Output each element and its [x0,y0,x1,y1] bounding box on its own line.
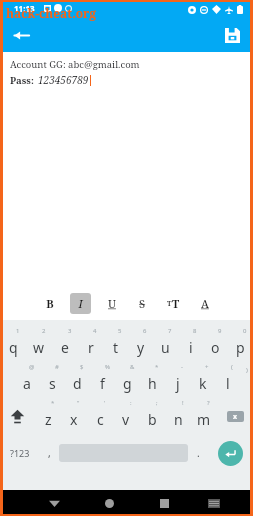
staticText: 123456789 [38,73,89,87]
button[interactable]: ' [87,398,113,434]
staticText: 1 [16,327,20,335]
button[interactable]: Switch keyboard [192,490,236,516]
button[interactable]: % [90,362,115,398]
staticText: 3 [68,327,72,335]
button[interactable]: + [190,362,215,398]
button[interactable]: Recent apps [137,490,192,516]
button[interactable]: , [39,434,59,472]
button[interactable]: ; [139,398,165,434]
button[interactable]: ( [215,362,240,398]
button[interactable]: Text size [163,293,184,314]
staticText: j [176,374,180,393]
staticText: ) [246,366,248,374]
staticText: U [108,296,116,311]
staticText: Account GG: abc@gmail.com [10,58,140,71]
button[interactable]: ?123 [0,434,39,472]
staticText: ' [104,399,106,407]
staticText: l [226,374,230,393]
staticText: - [181,363,183,371]
button[interactable]: 7 [153,326,178,362]
button[interactable]: ? [191,398,217,434]
staticText: q [9,338,18,357]
button[interactable]: Strikethrough [132,293,153,314]
staticText: , [48,446,51,460]
staticText: n [174,410,183,429]
staticText: e [61,338,69,357]
staticText: f [100,374,105,393]
staticText: @ [29,363,35,371]
button[interactable]: Back [6,20,36,50]
button[interactable]: Save [217,20,247,50]
staticText: w [33,338,45,357]
staticText: y [137,338,145,357]
button[interactable]: Home [82,490,137,516]
staticText: u [161,338,170,357]
staticText: " [77,399,80,407]
staticText: : [130,399,132,407]
button[interactable]: Back [27,490,82,516]
button[interactable]: 1 [0,326,26,362]
button[interactable]: 5 [103,326,128,362]
staticText: i [189,338,193,357]
staticText: * [155,363,159,371]
button[interactable]: 4 [78,326,103,362]
staticText: 6 [143,327,147,335]
staticText: 5 [118,327,122,335]
staticText: x [233,412,238,422]
button[interactable]: : [113,398,139,434]
button[interactable]: " [61,398,87,434]
button[interactable]: 6 [128,326,153,362]
staticText: B [46,296,54,311]
button[interactable]: & [115,362,140,398]
staticText: ? [207,399,210,407]
staticText: d [73,374,82,393]
button[interactable]: 8 [178,326,203,362]
button[interactable]: Backspace [217,398,253,434]
button[interactable]: Text color [194,293,215,314]
button[interactable]: - [165,362,190,398]
staticText: 11:13 [14,3,35,14]
staticText: 9 [218,327,222,335]
staticText: A [201,296,209,311]
button[interactable]: $ [65,362,90,398]
staticText: T [167,299,172,309]
button[interactable]: 3 [52,326,78,362]
staticText: h [148,374,157,393]
staticText: 8 [193,327,197,335]
staticText: # [55,363,59,371]
button[interactable]: * [35,398,61,434]
staticText: ! [182,399,184,407]
button[interactable]: . [188,434,208,472]
button[interactable]: @ [14,362,40,398]
button[interactable]: 9 [203,326,228,362]
staticText: r [88,338,94,357]
button[interactable]: Enter [218,441,243,466]
staticText: g [123,374,132,393]
staticText: * [51,399,55,407]
staticText: S [139,296,146,311]
staticText: b [148,410,157,429]
button[interactable]: ! [165,398,191,434]
button[interactable]: I [70,293,91,314]
staticText: 4 [93,327,97,335]
button[interactable]: U [101,293,122,314]
button[interactable]: 0 [228,326,253,362]
button[interactable]: * [140,362,165,398]
button[interactable]: # [40,362,65,398]
staticText: T [172,296,180,311]
staticText: 2 [42,327,46,335]
button[interactable]: 2 [26,326,52,362]
staticText: s [49,374,56,393]
staticText: t [113,338,119,357]
staticText: 7 [168,327,172,335]
button[interactable]: B [39,293,60,314]
button[interactable]: Shift [0,398,35,434]
staticText: I [78,296,83,311]
staticText: c [97,410,104,429]
staticText: x [70,410,78,429]
staticText: hack-cheat.org [6,5,97,21]
staticText: p [236,338,245,357]
staticText: a [23,374,31,393]
staticText: ?123 [10,447,30,459]
